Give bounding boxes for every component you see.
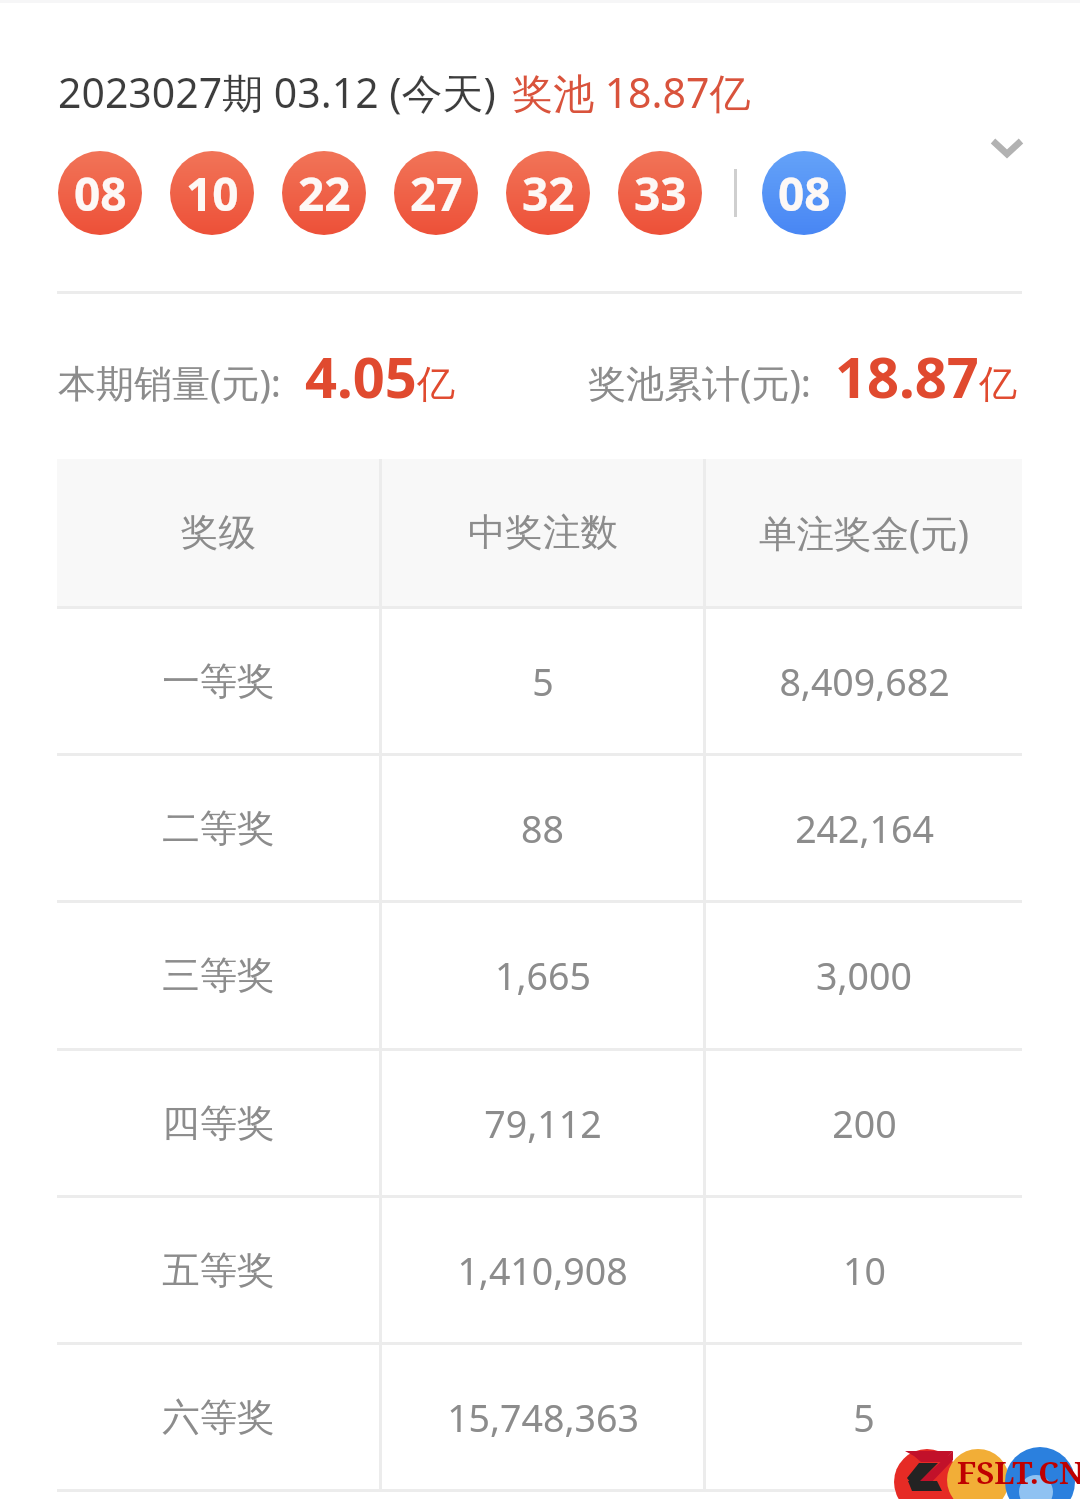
button[interactable]: 四等奖 bbox=[57, 1051, 379, 1195]
staticText: 单注奖金(元) bbox=[759, 507, 969, 558]
staticText: 88 bbox=[521, 803, 564, 854]
button[interactable]: 8,409,682 bbox=[706, 609, 1022, 753]
button[interactable]: 32 bbox=[506, 151, 590, 235]
button[interactable]: 1,410,908 bbox=[382, 1198, 703, 1342]
button[interactable]: 5 bbox=[382, 609, 703, 753]
staticText: 22 bbox=[298, 162, 351, 225]
button[interactable]: 15,748,363 bbox=[382, 1345, 703, 1489]
button[interactable]: 22 bbox=[282, 151, 366, 235]
button[interactable]: 33 bbox=[618, 151, 702, 235]
button[interactable]: 88 bbox=[382, 756, 703, 900]
button[interactable]: 79,112 bbox=[382, 1051, 703, 1195]
staticText: 5 bbox=[853, 1392, 875, 1443]
staticText: 5 bbox=[532, 656, 554, 707]
staticText: 8,409,682 bbox=[779, 656, 950, 707]
staticText: 二等奖 bbox=[162, 805, 275, 852]
staticText: 1,410,908 bbox=[457, 1245, 628, 1296]
staticText: 18.87 bbox=[835, 338, 979, 414]
staticText: 27 bbox=[410, 162, 463, 225]
staticText: 奖级 bbox=[181, 509, 256, 556]
staticText: 4.05 bbox=[305, 338, 417, 414]
staticText: 亿 bbox=[417, 360, 455, 408]
button[interactable]: 单注奖金(元) bbox=[706, 459, 1022, 606]
button[interactable]: 五等奖 bbox=[57, 1198, 379, 1342]
button[interactable]: 六等奖 bbox=[57, 1345, 379, 1489]
button[interactable]: 27 bbox=[394, 151, 478, 235]
staticText: 奖池 18.87亿 bbox=[512, 64, 751, 120]
staticText: 六等奖 bbox=[162, 1394, 275, 1441]
button[interactable]: 08 bbox=[762, 151, 846, 235]
staticText: 本期销量(元): bbox=[58, 356, 281, 408]
button[interactable]: 一等奖 bbox=[57, 609, 379, 753]
staticText: 08 bbox=[74, 162, 127, 225]
staticText: 亿 bbox=[979, 360, 1017, 408]
button[interactable]: 三等奖 bbox=[57, 903, 379, 1048]
button[interactable]: 1,665 bbox=[382, 903, 703, 1048]
button[interactable]: 奖级 bbox=[57, 459, 379, 606]
button[interactable]: 3,000 bbox=[706, 903, 1022, 1048]
staticText: 200 bbox=[832, 1098, 897, 1149]
staticText: 33 bbox=[634, 162, 687, 225]
button[interactable]: 10 bbox=[706, 1198, 1022, 1342]
staticText: 五等奖 bbox=[162, 1247, 275, 1294]
staticText: 四等奖 bbox=[162, 1100, 275, 1147]
button[interactable]: 200 bbox=[706, 1051, 1022, 1195]
staticText: 1,665 bbox=[495, 950, 591, 1001]
staticText: 三等奖 bbox=[162, 952, 275, 999]
staticText: 3,000 bbox=[816, 950, 912, 1001]
button[interactable]: Expand bbox=[977, 117, 1037, 177]
button[interactable]: 08 bbox=[58, 151, 142, 235]
staticText: 08 bbox=[778, 162, 831, 225]
staticText: 奖池累计(元): bbox=[588, 356, 811, 408]
button[interactable]: 10 bbox=[170, 151, 254, 235]
staticText: 2023027期 03.12 (今天) bbox=[58, 64, 496, 120]
button[interactable]: 二等奖 bbox=[57, 756, 379, 900]
staticText: 15,748,363 bbox=[447, 1392, 639, 1443]
staticText: 10 bbox=[843, 1245, 886, 1296]
staticText: FSLT.CN bbox=[957, 1451, 1080, 1493]
button[interactable]: 242,164 bbox=[706, 756, 1022, 900]
staticText: 10 bbox=[186, 162, 239, 225]
staticText: 一等奖 bbox=[162, 658, 275, 705]
staticText: 79,112 bbox=[484, 1098, 602, 1149]
staticText: 中奖注数 bbox=[468, 509, 618, 556]
button[interactable]: 5 bbox=[706, 1345, 1022, 1489]
button[interactable]: 中奖注数 bbox=[382, 459, 703, 606]
staticText: 32 bbox=[522, 162, 575, 225]
staticText: 242,164 bbox=[795, 803, 934, 854]
